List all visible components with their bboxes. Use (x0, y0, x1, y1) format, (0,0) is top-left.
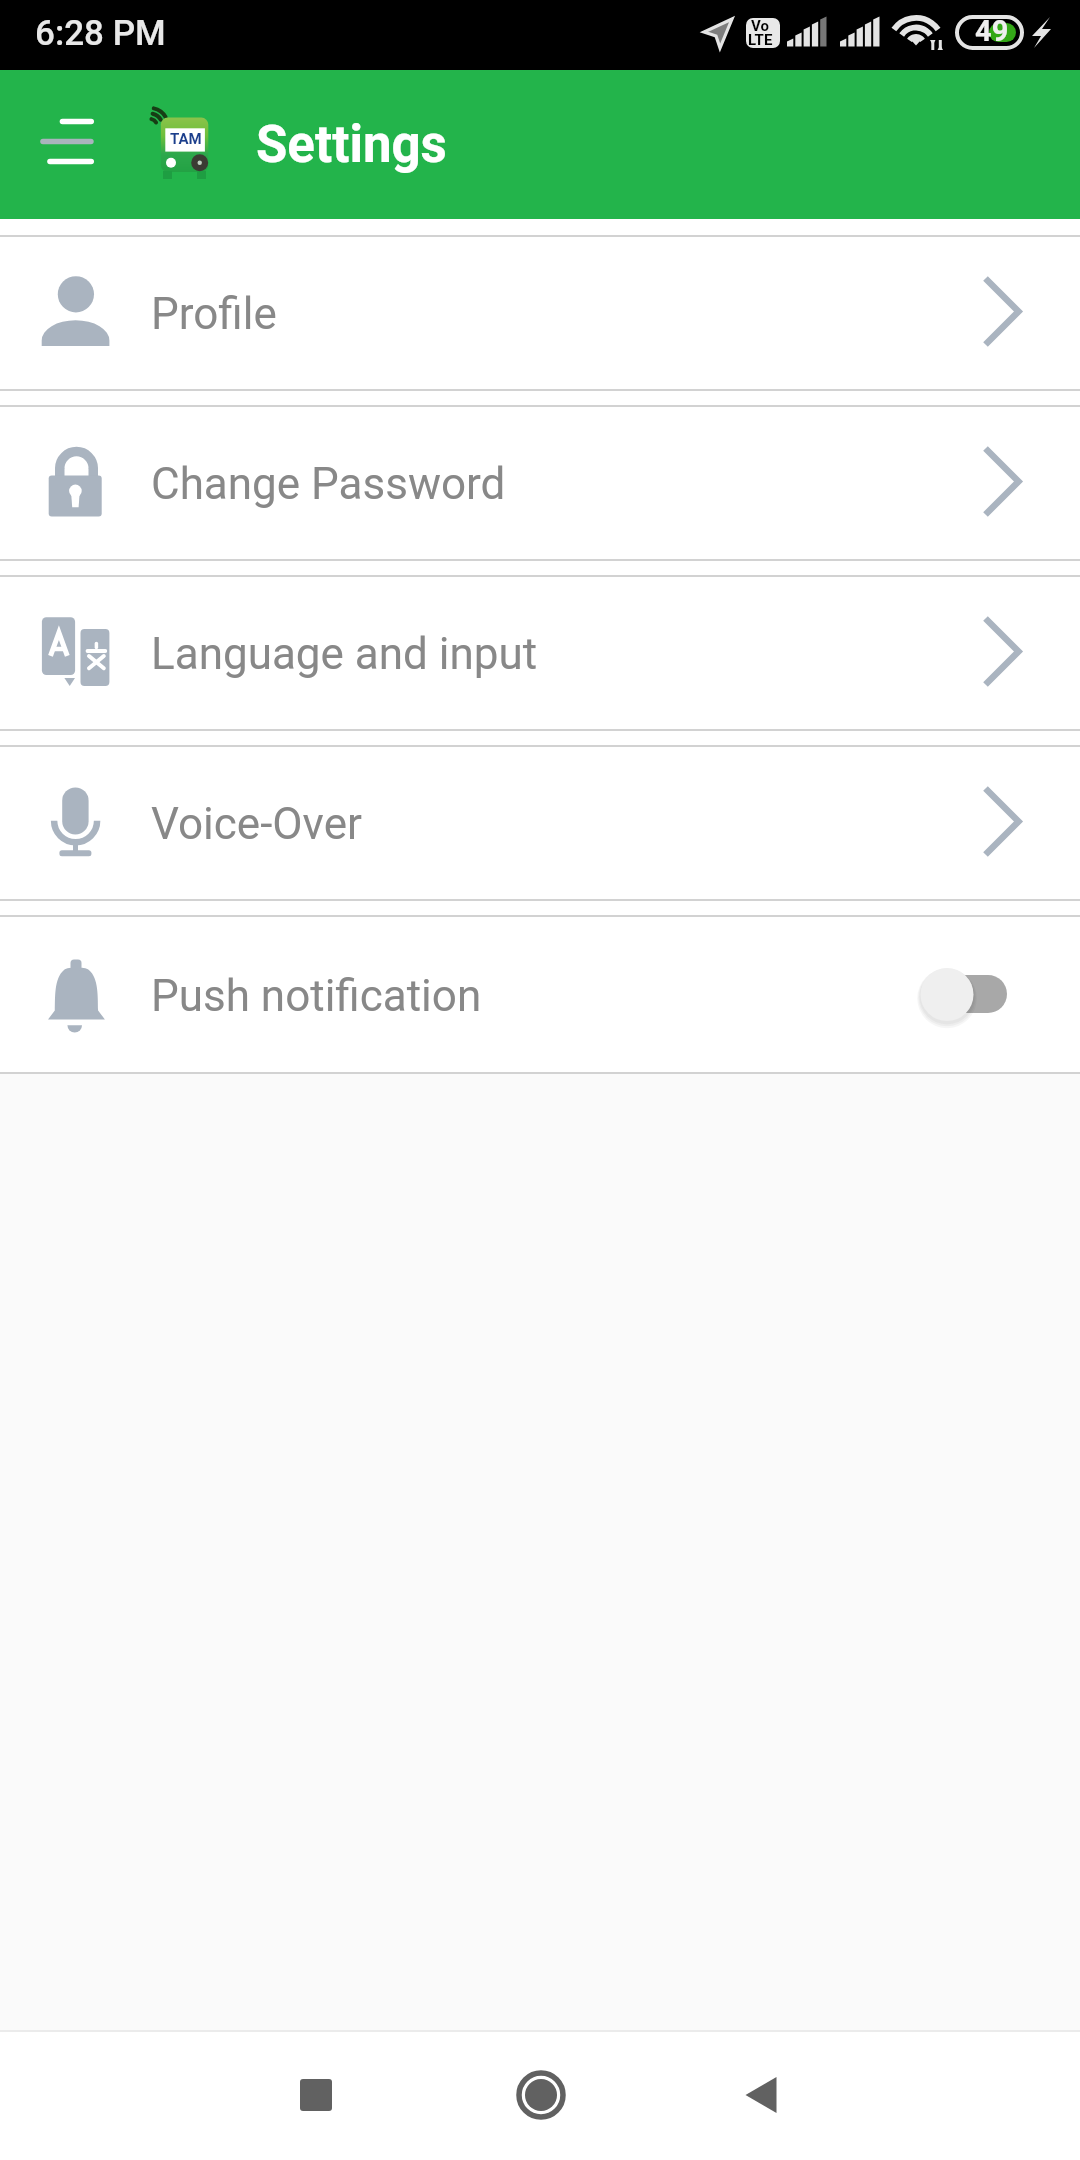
button[interactable]: Back (716, 2050, 806, 2140)
button[interactable]: Language and input (0, 577, 1080, 729)
staticText: LTE (748, 31, 773, 49)
staticText: 49 (975, 14, 1009, 48)
button[interactable]: Voice-Over (0, 747, 1080, 899)
button[interactable]: Push notification (0, 917, 1080, 1072)
staticText: Settings (256, 115, 447, 175)
button[interactable]: Open navigation menu (34, 113, 102, 175)
staticText: Profile (151, 288, 277, 340)
button[interactable]: Change Password (0, 407, 1080, 559)
staticText: 6:28 PM (35, 13, 166, 54)
staticText: Push notification (151, 970, 482, 1022)
staticText: Voice-Over (151, 798, 362, 850)
staticText: Language and input (151, 628, 538, 680)
button[interactable]: Push notification toggle (908, 957, 1028, 1027)
button[interactable]: Profile (0, 237, 1080, 389)
staticText: Change Password (151, 458, 506, 510)
staticText: Vo (751, 17, 769, 35)
button[interactable]: Home (496, 2050, 586, 2140)
staticText: TAM (170, 130, 202, 148)
button[interactable]: Recent apps (271, 2050, 361, 2140)
